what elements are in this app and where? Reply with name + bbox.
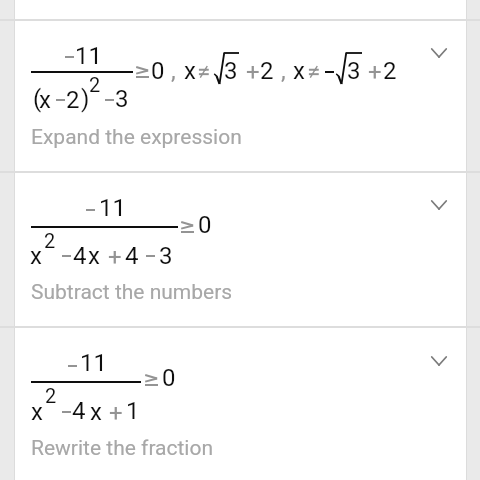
staticText: , [171,57,176,85]
staticText: 11 [99,194,126,222]
staticText: ) [81,85,90,113]
staticText: ≠ [307,58,321,86]
staticText: 3 [224,57,238,85]
staticText: Expand the expression [31,125,242,150]
staticText: 11 [80,349,107,377]
staticText: 2 [66,86,80,114]
staticText: + [108,243,122,271]
staticText: 0 [151,57,165,85]
staticText: + [246,58,260,86]
staticText: , [281,57,286,85]
staticText: 4 [73,242,87,270]
staticText: + [109,399,123,427]
staticText: x [39,86,51,114]
staticText: Rewrite the fraction [31,436,214,461]
staticText: x [90,398,102,426]
staticText: x [88,242,100,270]
staticText: 0 [162,364,176,392]
staticText: 4 [72,397,86,425]
staticText: 11 [75,42,102,70]
staticText: 3 [115,85,129,113]
staticText: 0 [198,211,212,239]
staticText: 2 [383,57,397,85]
staticText: Subtract the numbers [31,280,233,305]
button[interactable]: Expand step [419,186,459,226]
staticText: x [30,242,42,270]
staticText: 3 [347,57,361,85]
staticText: x [31,398,43,426]
staticText: ≠ [197,58,211,86]
button[interactable]: Expand step [419,34,459,74]
staticText: 2 [45,384,57,407]
staticText: ( [33,85,42,113]
staticText: 2 [89,73,101,96]
staticText: + [368,58,382,86]
staticText: x [293,57,305,85]
staticText: 3 [159,242,173,270]
staticText: 2 [44,229,56,252]
button[interactable] [0,20,480,171]
button[interactable]: Expand step [419,342,459,382]
staticText: 4 [125,242,139,270]
staticText: 2 [260,57,274,85]
staticText: x [184,57,196,85]
staticText: 1 [126,397,140,425]
